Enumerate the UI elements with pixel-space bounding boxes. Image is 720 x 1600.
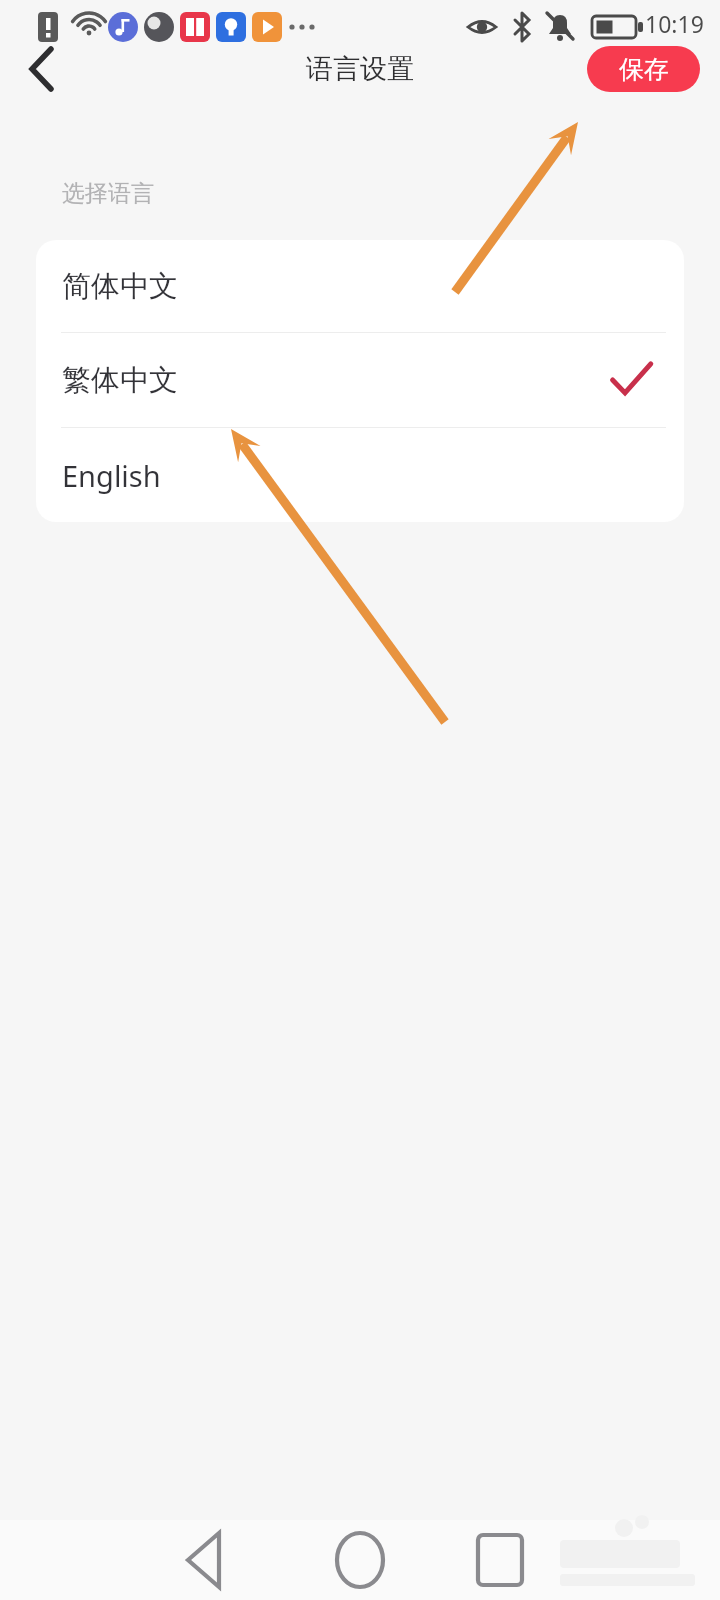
button[interactable]: English bbox=[36, 428, 684, 522]
button[interactable]: Back bbox=[170, 1525, 240, 1595]
button[interactable]: 繁体中文 bbox=[36, 333, 684, 427]
button[interactable]: Home bbox=[325, 1525, 395, 1595]
button[interactable]: 保存 bbox=[587, 46, 700, 92]
button[interactable]: 简体中文 bbox=[36, 240, 684, 332]
staticText: 10:19 bbox=[645, 8, 704, 39]
staticText: 选择语言 bbox=[62, 179, 154, 208]
staticText: 语言设置 bbox=[306, 52, 414, 86]
staticText: 保存 bbox=[619, 54, 669, 85]
staticText: 繁体中文 bbox=[62, 362, 178, 399]
staticText: 简体中文 bbox=[62, 268, 178, 305]
staticText: English bbox=[62, 456, 161, 495]
button[interactable]: Back bbox=[14, 46, 70, 92]
button[interactable]: Recent apps bbox=[465, 1525, 535, 1595]
